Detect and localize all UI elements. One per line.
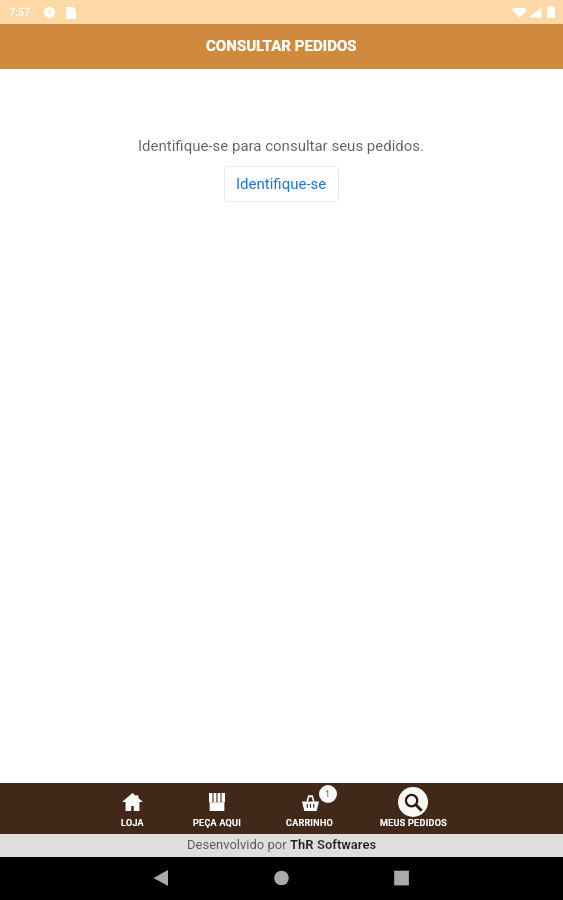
button[interactable]: Peça aqui <box>173 783 261 834</box>
staticText: 7:57 <box>9 6 31 19</box>
staticText: Identifique-se <box>236 175 327 193</box>
button[interactable]: Identifique-se <box>224 166 339 202</box>
button[interactable]: Loja <box>88 783 176 834</box>
staticText: Identifique-se para consultar seus pedid… <box>138 137 425 155</box>
staticText: PEÇA AQUI <box>193 818 242 829</box>
staticText: LOJA <box>121 818 144 829</box>
staticText: CONSULTAR PEDIDOS <box>206 37 357 55</box>
button[interactable]: Carrinho <box>266 783 354 834</box>
staticText: ThR Softwares <box>290 837 377 852</box>
staticText: CARRINHO <box>286 818 334 829</box>
staticText: MEUS PEDIDOS <box>380 818 447 829</box>
staticText: 1 <box>325 789 331 800</box>
button[interactable]: Meus pedidos <box>369 783 457 834</box>
staticText: Desenvolvido por <box>187 837 290 852</box>
